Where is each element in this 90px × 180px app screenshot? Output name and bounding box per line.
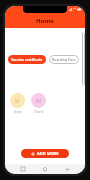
button[interactable]: Travel Tick <box>82 32 85 86</box>
button[interactable]: Boarding Pass <box>49 55 79 64</box>
staticText: Charlie <box>34 110 44 114</box>
staticText: M <box>36 97 42 105</box>
staticText: U <box>15 97 20 105</box>
staticText: Boarding Pass <box>52 57 76 62</box>
button[interactable]: U <box>10 93 25 114</box>
staticText: Vaccine certificate <box>11 57 43 62</box>
staticText: ADD MORE <box>37 151 59 156</box>
staticText: Jenny <box>14 110 22 114</box>
button[interactable]: Back <box>63 164 73 174</box>
staticText: Home <box>36 17 54 25</box>
button[interactable]: ADD MORE <box>21 149 69 158</box>
button[interactable]: Recents <box>18 164 28 174</box>
button[interactable]: Home <box>40 164 50 174</box>
button[interactable]: M <box>31 93 46 114</box>
button[interactable]: Vaccine certificate <box>8 55 46 64</box>
